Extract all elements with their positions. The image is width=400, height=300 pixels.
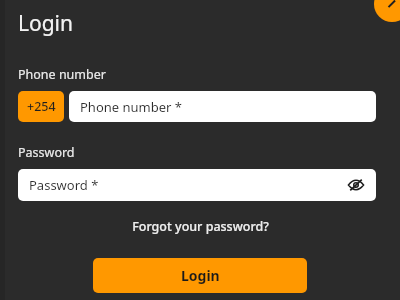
staticText: Password *: [29, 176, 99, 194]
button[interactable]: Forgot your password?: [126, 215, 275, 238]
button[interactable]: Close: [374, 0, 400, 22]
button[interactable]: +254: [18, 91, 64, 122]
staticText: Phone number *: [80, 98, 182, 116]
button[interactable]: Password *: [18, 169, 376, 201]
staticText: Login: [181, 266, 220, 285]
staticText: Login: [18, 9, 74, 38]
button[interactable]: Login: [93, 258, 307, 293]
staticText: +254: [27, 98, 56, 115]
button[interactable]: Show password: [345, 174, 367, 196]
staticText: Password: [18, 144, 75, 161]
button[interactable]: Phone number *: [69, 91, 376, 122]
staticText: Phone number: [18, 66, 106, 83]
staticText: Forgot your password?: [132, 218, 269, 235]
